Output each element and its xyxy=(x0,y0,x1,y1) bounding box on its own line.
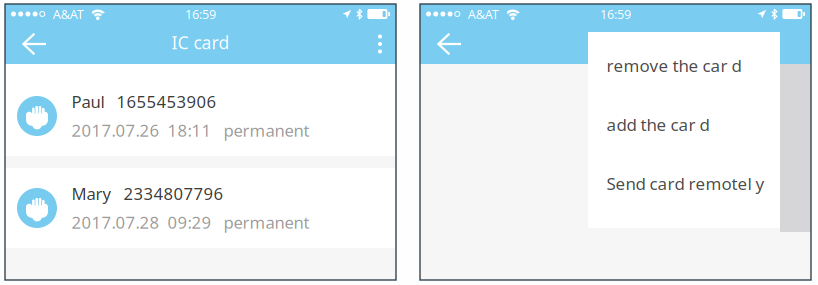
button[interactable]: Back xyxy=(5,24,59,64)
staticText: 16:59 xyxy=(185,5,216,23)
staticText: add the car d xyxy=(606,113,709,136)
staticText: remove the car d xyxy=(606,54,741,77)
button[interactable]: Mary 2334807796 xyxy=(5,168,396,248)
button[interactable]: add the car d xyxy=(588,95,780,154)
staticText: Paul 1655453906 xyxy=(71,90,216,113)
staticText: 2017.07.28 09:29 permanent xyxy=(71,211,309,234)
staticText: IC card xyxy=(171,30,229,54)
button[interactable]: More options xyxy=(364,24,396,64)
staticText: Mary 2334807796 xyxy=(71,182,223,205)
staticText: Send card remotel y xyxy=(606,172,764,195)
button[interactable]: Send card remotel y xyxy=(588,154,780,213)
staticText: 16:59 xyxy=(600,5,631,23)
button[interactable]: Paul 1655453906 xyxy=(5,76,396,156)
staticText: A&AT xyxy=(468,5,499,23)
staticText: 2017.07.26 18:11 permanent xyxy=(71,119,309,142)
button[interactable]: Back xyxy=(420,24,474,64)
button[interactable]: remove the car d xyxy=(588,36,780,95)
staticText: A&AT xyxy=(53,5,84,23)
